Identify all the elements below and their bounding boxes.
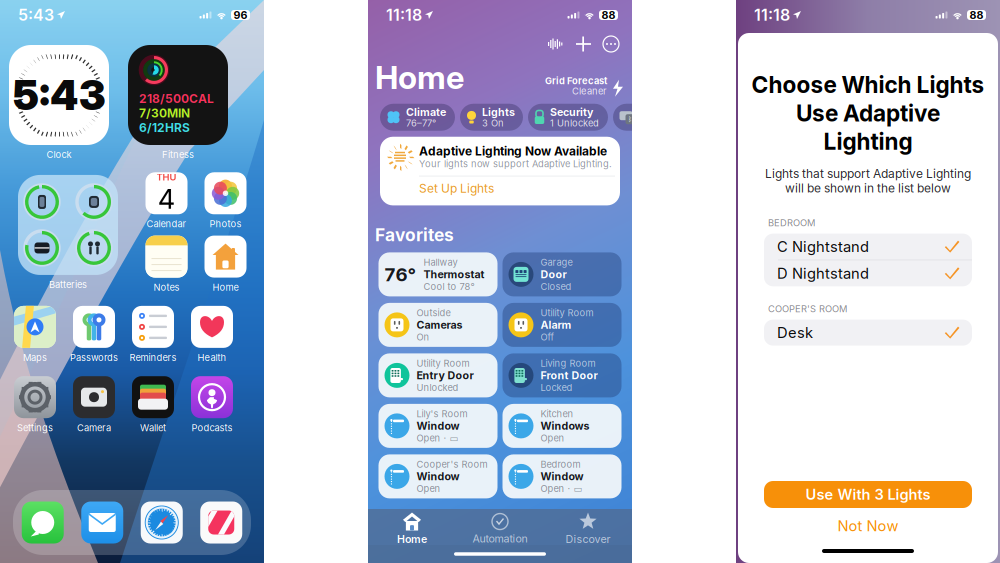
button[interactable]: C Nightstand	[764, 234, 972, 260]
button[interactable]: Mail	[72, 490, 132, 555]
staticText: Cooper's Room	[416, 459, 487, 470]
button[interactable]: Desk	[764, 320, 972, 346]
staticText: Cleaner	[572, 85, 607, 97]
staticText: Entry Door	[416, 369, 473, 382]
button[interactable]: Utility Room	[502, 303, 621, 347]
button[interactable]: Health	[182, 306, 241, 363]
staticText: Clock	[46, 149, 71, 160]
button[interactable]: Discover	[544, 511, 632, 547]
staticText: Favorites	[375, 224, 454, 245]
button[interactable]: Outside	[378, 303, 497, 347]
button[interactable]: Bedroom	[502, 454, 621, 498]
button[interactable]: Not Now	[764, 513, 972, 539]
staticText: Grid Forecast	[545, 75, 607, 86]
staticText: 7/30MIN	[139, 106, 190, 120]
staticText: Garage	[540, 257, 572, 268]
button[interactable]: Utility Room	[378, 353, 497, 397]
staticText: 88	[601, 8, 615, 21]
staticText: D Nightstand	[777, 264, 869, 282]
staticText: Front Door	[540, 369, 597, 382]
button[interactable]: D Nightstand	[764, 260, 972, 286]
staticText: Cameras	[416, 318, 462, 331]
button[interactable]: Add	[570, 30, 597, 57]
staticText: Open · ▭	[540, 483, 582, 494]
button[interactable]: Reminders	[123, 306, 182, 363]
staticText: Not Now	[837, 517, 898, 535]
staticText: Open · ▭	[416, 432, 458, 444]
staticText: Calendar	[146, 218, 186, 230]
staticText: Alarm	[540, 318, 571, 331]
button[interactable]: Siri	[542, 32, 570, 56]
staticText: will be shown in the list below	[785, 181, 951, 195]
button[interactable]: Lily's Room	[378, 404, 497, 448]
button[interactable]: Home	[196, 236, 255, 293]
staticText: BEDROOM	[768, 217, 815, 229]
staticText: Security	[550, 106, 593, 118]
staticText: Use Adaptive	[796, 99, 940, 127]
staticText: Batteries	[49, 279, 87, 290]
staticText: Open	[416, 483, 440, 494]
button[interactable]: ᛒ	[613, 104, 700, 131]
staticText: 1 Unlocked	[550, 117, 599, 129]
button[interactable]: Climate	[380, 104, 455, 131]
button[interactable]: 76°	[378, 252, 497, 296]
staticText: Discover	[565, 532, 610, 545]
button[interactable]: Maps	[5, 306, 64, 363]
staticText: Adaptive Lighting Now Available	[419, 144, 607, 158]
staticText: Door	[540, 268, 566, 281]
staticText: Your lights now support Adaptive Lightin…	[419, 158, 612, 170]
staticText: 5:43	[13, 70, 105, 120]
button[interactable]: Use With 3 Lights	[764, 481, 972, 508]
button[interactable]: Passwords	[64, 306, 123, 363]
staticText: Living Room	[540, 358, 595, 369]
button[interactable]: Photos	[196, 172, 255, 230]
button[interactable]: Set Up Lights	[387, 176, 615, 200]
staticText: Utility Room	[540, 307, 593, 318]
staticText: THU	[156, 171, 176, 183]
staticText: Off	[540, 331, 553, 343]
button[interactable]: News	[191, 490, 251, 555]
staticText: Settings	[17, 422, 53, 433]
staticText: Desk	[777, 324, 813, 341]
staticText: Hallway	[423, 257, 457, 268]
staticText: Outside	[416, 307, 450, 318]
staticText: Home	[375, 58, 464, 97]
staticText: Health	[197, 352, 226, 363]
staticText: Photos	[209, 218, 241, 230]
button[interactable]: Messages	[13, 490, 72, 555]
button[interactable]: Kitchen	[502, 404, 621, 448]
staticText: 96	[233, 8, 247, 21]
staticText: C Nightstand	[777, 238, 869, 255]
button[interactable]: Podcasts	[182, 376, 241, 433]
button[interactable]: Notes	[137, 236, 196, 293]
button[interactable]: Home	[368, 511, 456, 547]
button[interactable]: Safari	[132, 490, 191, 555]
button[interactable]: Living Room	[502, 353, 621, 397]
staticText: Home	[212, 282, 238, 293]
button[interactable]: Settings	[5, 376, 64, 433]
staticText: 6/12HRS	[139, 120, 190, 135]
button[interactable]: Cooper's Room	[378, 454, 497, 498]
staticText: Choose Which Lights	[751, 71, 984, 98]
staticText: Camera	[77, 422, 111, 433]
staticText: Windows	[540, 419, 589, 432]
staticText: COOPER'S ROOM	[768, 303, 847, 315]
button[interactable]: More	[597, 30, 625, 58]
button[interactable]: Garage	[502, 252, 621, 296]
staticText: Lily's Room	[416, 408, 467, 419]
button[interactable]: Wallet	[123, 376, 182, 433]
staticText: Maps	[23, 352, 47, 363]
staticText: Reminders	[129, 352, 176, 363]
staticText: Bedroom	[540, 459, 580, 470]
button[interactable]: Automation	[456, 511, 544, 547]
button[interactable]: Security	[528, 104, 608, 131]
staticText: Kitchen	[540, 408, 573, 419]
staticText: ᛒ	[628, 116, 632, 123]
button[interactable]: Camera	[64, 376, 123, 433]
staticText: 5:43	[18, 5, 54, 25]
button[interactable]: Lights	[460, 104, 523, 131]
staticText: 218/500CAL	[139, 91, 214, 106]
button[interactable]: THU	[137, 172, 196, 230]
